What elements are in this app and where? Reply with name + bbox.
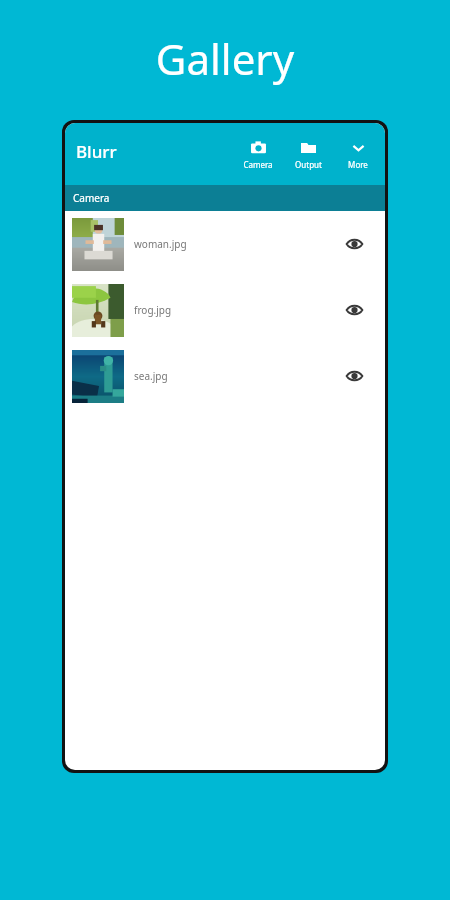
- button[interactable]: Output: [283, 123, 333, 185]
- staticText: sea.jpg: [134, 369, 168, 383]
- button[interactable]: frog.jpg: [65, 277, 385, 343]
- staticText: frog.jpg: [134, 303, 172, 317]
- button[interactable]: Camera: [233, 123, 283, 185]
- button[interactable]: More: [333, 123, 383, 185]
- staticText: Gallery: [0, 30, 450, 87]
- staticText: Output: [295, 159, 322, 170]
- button[interactable]: Preview frog.jpg: [341, 297, 367, 323]
- button[interactable]: sea.jpg: [65, 343, 385, 409]
- staticText: More: [348, 159, 368, 170]
- staticText: woman.jpg: [134, 237, 187, 251]
- button[interactable]: woman.jpg: [65, 211, 385, 277]
- button[interactable]: Preview woman.jpg: [341, 231, 367, 257]
- staticText: Blurr: [76, 140, 117, 163]
- staticText: Camera: [243, 159, 273, 170]
- button[interactable]: Preview sea.jpg: [341, 363, 367, 389]
- button[interactable]: Camera: [65, 185, 385, 211]
- staticText: Camera: [73, 191, 110, 205]
